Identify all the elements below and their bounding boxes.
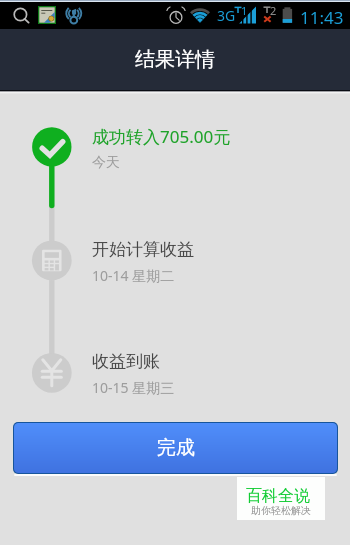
staticText: 百科全说 (246, 486, 310, 506)
staticText: 开始计算收益 (92, 239, 194, 260)
staticText: 收益到账 (92, 351, 160, 372)
button[interactable]: 完成 (13, 422, 338, 474)
staticText: 结果详情 (135, 47, 215, 72)
staticText: 10-14 星期二 (92, 266, 175, 285)
staticText: 成功转入705.00元 (92, 125, 231, 148)
button[interactable]: 成功转入705.00元 (92, 125, 350, 172)
staticText: 今天 (92, 154, 120, 172)
staticText: 助你轻松解决 (251, 504, 311, 517)
staticText: 完成 (157, 436, 195, 460)
staticText: 11:43 (300, 6, 344, 29)
staticText: 2 (270, 3, 277, 18)
button[interactable]: 开始计算收益 (92, 239, 350, 285)
staticText: 1 (241, 3, 248, 18)
staticText: 10-15 星期三 (92, 378, 175, 397)
staticText: 3G (217, 6, 236, 25)
button[interactable]: 收益到账 (92, 351, 350, 397)
